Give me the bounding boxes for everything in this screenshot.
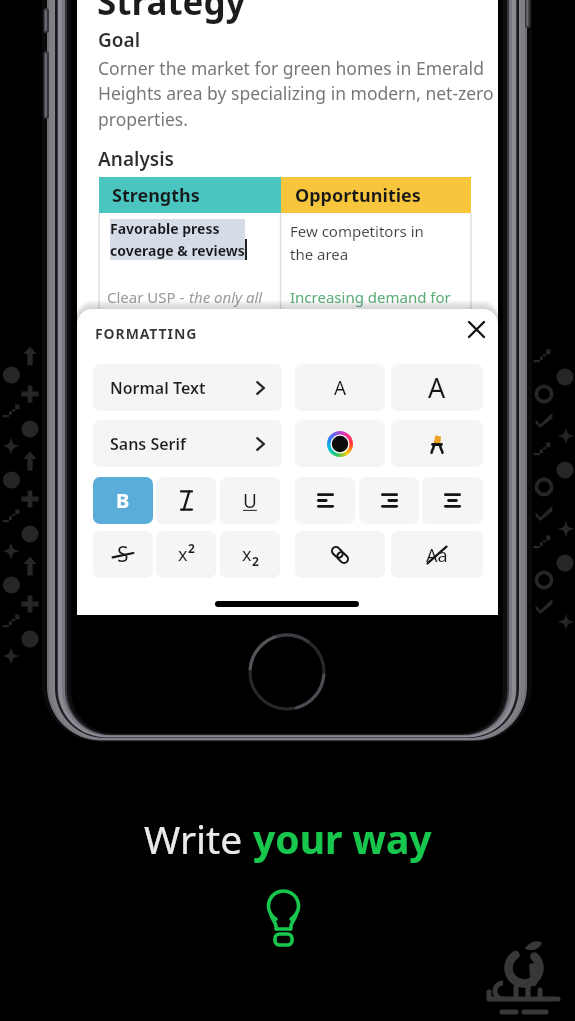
- staticText: Favorable press coverage & reviews: [110, 219, 245, 260]
- staticText: your way: [253, 812, 432, 865]
- staticText: Strengths: [112, 183, 200, 208]
- button[interactable]: Text color: [295, 420, 385, 467]
- staticText: 2: [252, 553, 259, 569]
- button[interactable]: Close formatting: [458, 311, 494, 347]
- button[interactable]: Subscript: [220, 531, 280, 578]
- staticText: Opportunities: [295, 183, 421, 208]
- staticText: Goal: [98, 27, 141, 53]
- button[interactable]: Clear formatting: [391, 531, 483, 578]
- button[interactable]: Sans Serif: [93, 420, 282, 467]
- staticText: S: [117, 540, 129, 569]
- button[interactable]: Align center: [422, 477, 483, 524]
- button[interactable]: Strikethrough: [93, 531, 153, 578]
- staticText: Analysis: [98, 146, 174, 172]
- staticText: 2: [188, 540, 195, 556]
- staticText: Clear USP -: [107, 287, 189, 307]
- staticText: Corner the market for green homes in Eme…: [98, 56, 494, 132]
- staticText: x: [242, 542, 252, 567]
- staticText: the only all: [189, 287, 263, 307]
- staticText: Write: [144, 812, 253, 865]
- staticText: Normal Text: [110, 377, 206, 399]
- staticText: A: [334, 375, 347, 401]
- button[interactable]: Decrease text size: [295, 364, 385, 411]
- button[interactable]: Normal Text: [93, 364, 282, 411]
- staticText: Increasing demand for: [290, 287, 451, 307]
- staticText: Few competitors in the area: [290, 221, 424, 264]
- button[interactable]: Increase text size: [391, 364, 483, 411]
- staticText: Strategy: [97, 0, 246, 26]
- staticText: B: [116, 487, 130, 514]
- button[interactable]: Italic: [156, 477, 216, 524]
- staticText: Aa: [426, 543, 448, 568]
- staticText: x: [178, 542, 188, 567]
- button[interactable]: Insert link: [295, 531, 385, 578]
- button[interactable]: Align left: [295, 477, 355, 524]
- button[interactable]: Highlight: [391, 420, 483, 467]
- button[interactable]: Align right: [359, 477, 419, 524]
- staticText: Sans Serif: [110, 433, 186, 455]
- staticText: A: [428, 369, 446, 406]
- staticText: FORMATTING: [95, 324, 198, 343]
- button[interactable]: Bold: [93, 477, 153, 524]
- button[interactable]: Superscript: [156, 531, 216, 578]
- button[interactable]: Underline: [220, 477, 280, 524]
- staticText: U: [243, 488, 257, 514]
